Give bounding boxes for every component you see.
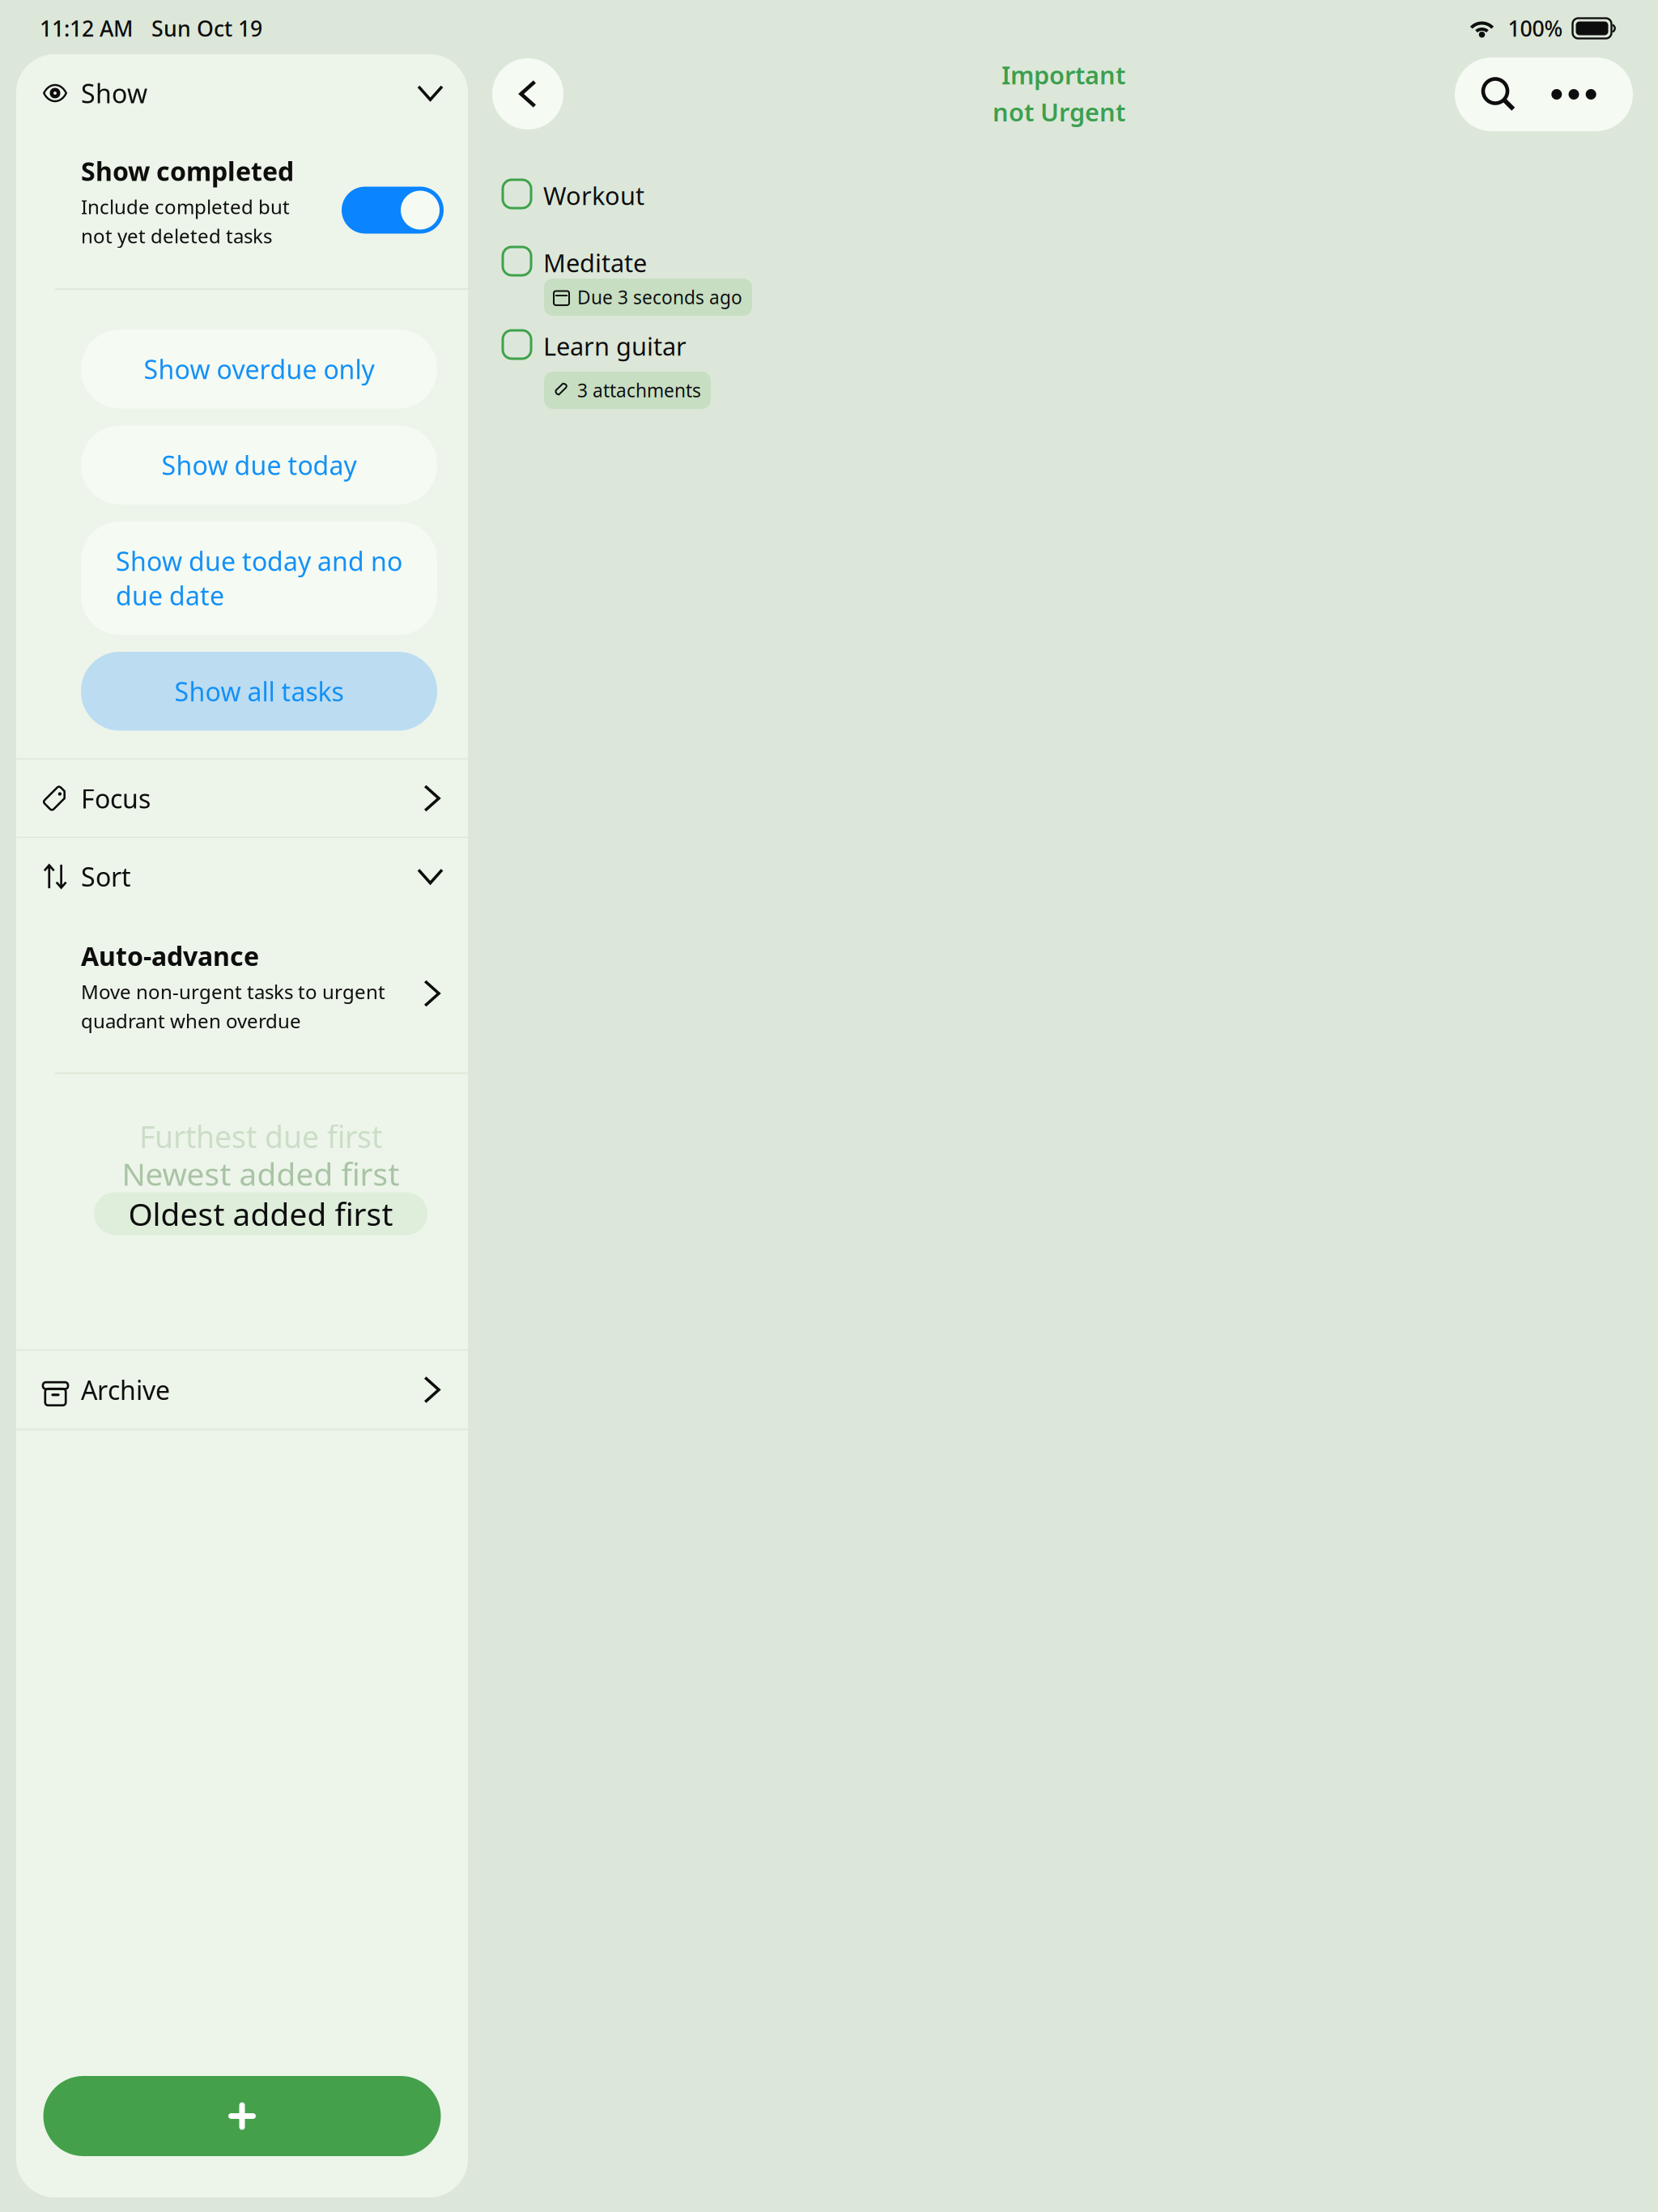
staticText: Oldest added first — [128, 1193, 393, 1234]
staticText: Move non-urgent tasks to urgent quadrant… — [81, 979, 385, 1034]
staticText: Show all tasks — [174, 674, 344, 708]
button[interactable]: Learn guitar — [503, 330, 843, 407]
button[interactable]: Focus — [16, 760, 468, 837]
button[interactable]: Meditate — [503, 247, 843, 330]
staticText: 100% — [1508, 14, 1563, 43]
button[interactable]: Oldest added first — [94, 1192, 427, 1235]
staticText: Include completed but not yet deleted ta… — [81, 194, 290, 249]
staticText: Show due today — [162, 448, 357, 482]
button[interactable]: Show due today and no due date — [81, 521, 437, 635]
button[interactable]: Show completed — [342, 187, 444, 234]
staticText: Focus — [81, 781, 151, 815]
button[interactable]: Sort — [16, 838, 468, 915]
staticText: Sun Oct 19 — [151, 14, 262, 43]
staticText: Show — [81, 76, 147, 110]
staticText: Show completed — [81, 154, 294, 188]
button[interactable]: Show — [16, 54, 468, 132]
staticText: Newest added first — [122, 1153, 400, 1194]
button[interactable]: Newest added first — [35, 1155, 487, 1192]
button[interactable]: Furthest due first — [35, 1118, 487, 1155]
staticText: Show due today and no due date — [116, 544, 402, 613]
staticText: Sort — [81, 859, 131, 894]
staticText: Important — [1001, 58, 1125, 91]
button[interactable]: Back — [492, 58, 563, 130]
button[interactable]: Archive — [16, 1351, 468, 1429]
staticText: Auto-advance — [81, 939, 259, 973]
staticText: not Urgent — [993, 95, 1125, 128]
staticText: Due 3 seconds ago — [577, 285, 742, 309]
button[interactable]: Show overdue only — [81, 330, 437, 408]
staticText: Workout — [543, 179, 644, 212]
staticText: 11:12 AM — [40, 14, 133, 43]
staticText: Show overdue only — [144, 352, 374, 386]
button[interactable]: Show due today — [81, 425, 437, 504]
button[interactable]: Search — [1468, 57, 1529, 131]
staticText: Furthest due first — [139, 1116, 382, 1156]
button[interactable]: Auto-advance — [16, 915, 468, 1072]
button[interactable]: Workout — [503, 180, 843, 247]
button[interactable]: Add task — [43, 2076, 441, 2156]
button[interactable]: Show all tasks — [81, 652, 437, 731]
staticText: 3 attachments — [577, 378, 701, 402]
staticText: Meditate — [543, 246, 647, 279]
button[interactable]: More options — [1529, 57, 1618, 131]
staticText: Archive — [81, 1373, 170, 1407]
staticText: Learn guitar — [543, 330, 687, 362]
